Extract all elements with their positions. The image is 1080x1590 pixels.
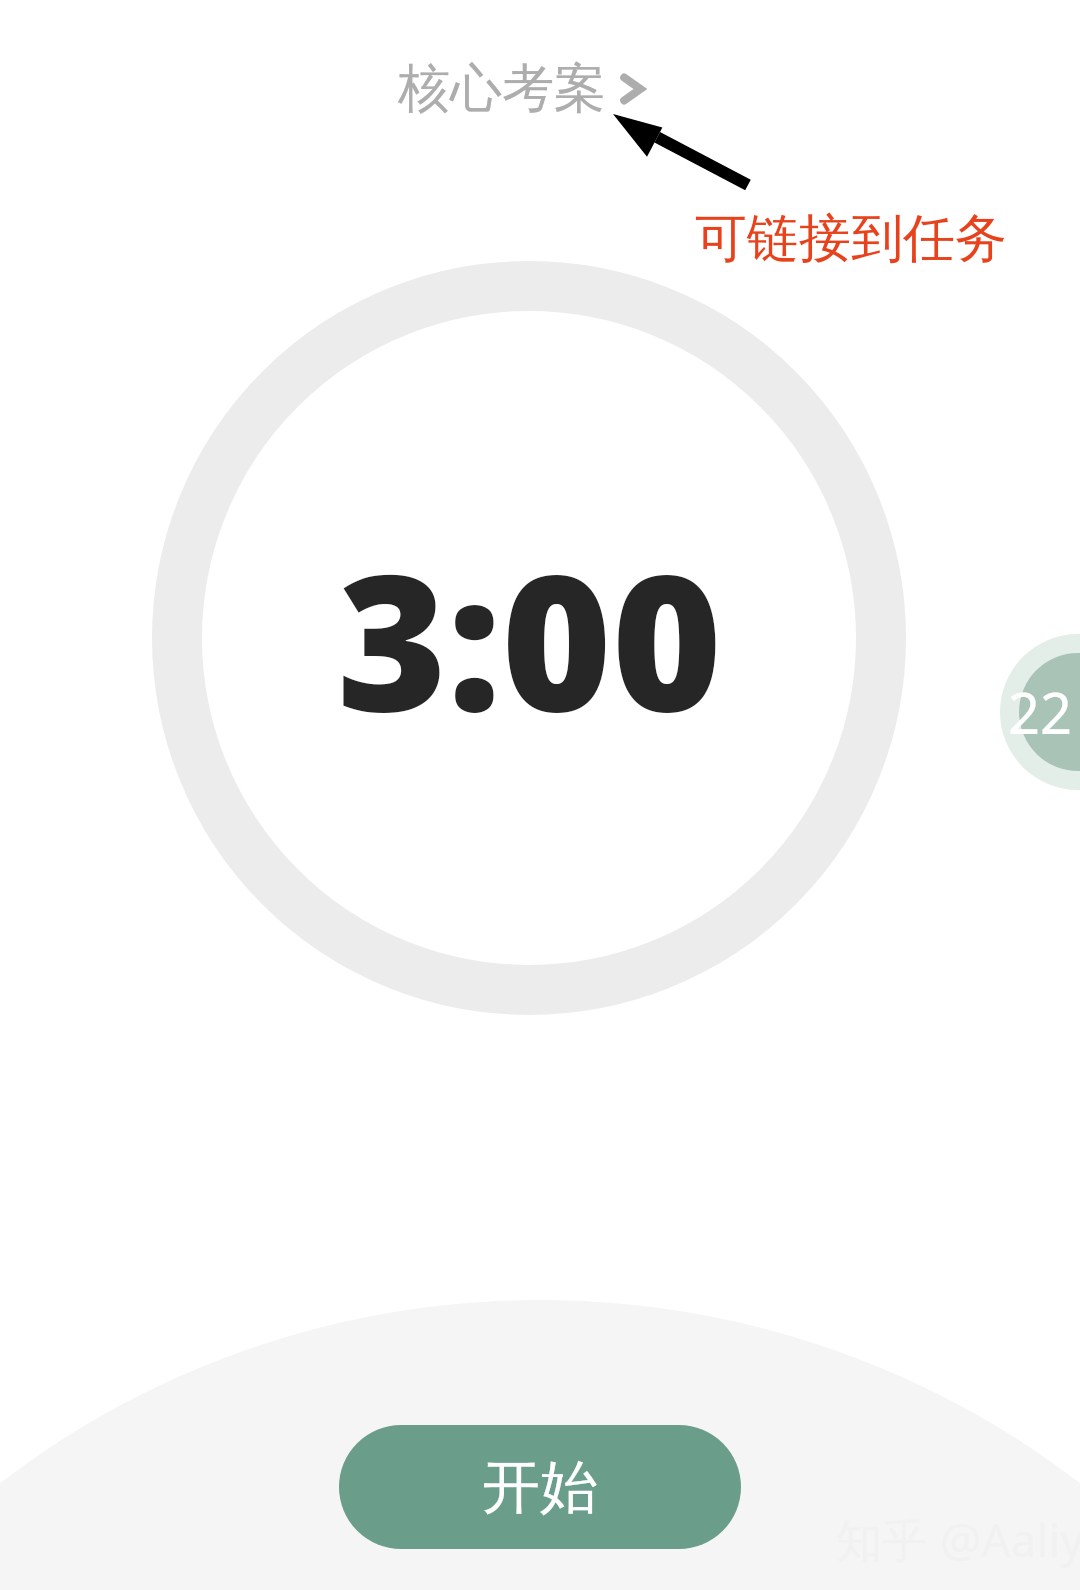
button[interactable]: 22 tasks <box>1008 672 1080 752</box>
staticText: 可链接到任务 <box>695 206 1007 272</box>
button[interactable]: 核心考案 <box>398 56 646 122</box>
staticText: 3:00 <box>337 510 722 766</box>
staticText: 核心考案 <box>398 56 606 122</box>
button[interactable]: 开始 <box>339 1425 741 1549</box>
staticText: 22 <box>1008 674 1073 750</box>
staticText: 开始 <box>482 1451 598 1524</box>
